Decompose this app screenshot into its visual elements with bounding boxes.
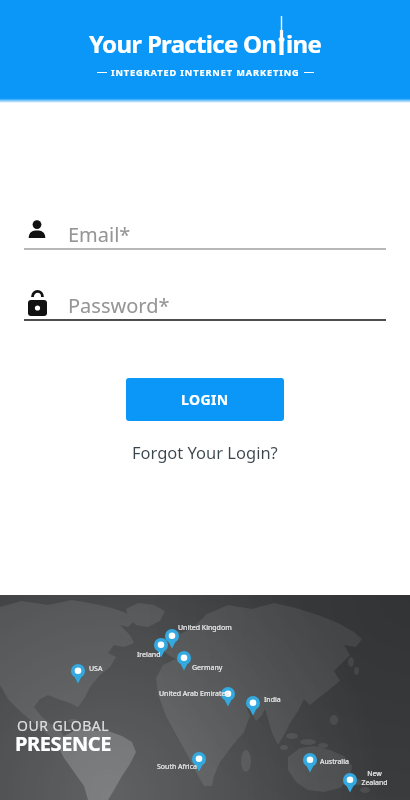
- button[interactable]: LOGIN: [126, 378, 284, 421]
- staticText: LOGIN: [181, 390, 229, 409]
- staticText: New Zealand: [361, 769, 388, 787]
- staticText: Forgot Your Login?: [132, 441, 278, 463]
- staticText: United Arab Emirates: [159, 689, 229, 699]
- staticText: Germany: [192, 663, 223, 673]
- staticText: South Africa: [157, 762, 197, 772]
- staticText: ine: [286, 27, 322, 60]
- staticText: USA: [89, 664, 103, 674]
- button[interactable]: Password*: [68, 292, 170, 319]
- staticText: Your Practice On: [89, 27, 277, 60]
- button[interactable]: Email*: [68, 221, 131, 248]
- button[interactable]: [28, 290, 47, 316]
- staticText: India: [264, 695, 281, 705]
- button[interactable]: [28, 220, 46, 238]
- staticText: INTEGRATED INTERNET MARKETING: [111, 66, 300, 79]
- button[interactable]: Forgot Your Login?: [0, 441, 410, 463]
- staticText: Australia: [320, 757, 349, 767]
- staticText: Ireland: [137, 650, 161, 660]
- staticText: OUR GLOBAL: [17, 716, 110, 735]
- staticText: United Kingdom: [178, 623, 232, 633]
- staticText: PRESENCE: [15, 730, 112, 757]
